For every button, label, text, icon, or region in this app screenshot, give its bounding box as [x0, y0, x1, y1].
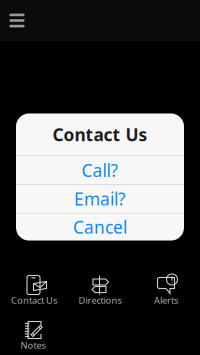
button[interactable]: Cancel	[16, 214, 184, 241]
staticText: Notes	[20, 339, 45, 351]
staticText: Cancel	[73, 215, 127, 238]
button[interactable]: Alerts	[133, 275, 199, 320]
staticText: Contact Us	[52, 123, 147, 146]
staticText: Email?	[74, 187, 126, 210]
staticText: Call?	[81, 159, 118, 182]
staticText: Directions	[78, 294, 121, 306]
button[interactable]: Menu	[0, 0, 34, 41]
staticText: Alerts	[154, 294, 178, 306]
button[interactable]: Notes	[0, 320, 66, 355]
button[interactable]: Directions	[67, 275, 133, 320]
button[interactable]: Contact Us	[1, 275, 67, 320]
button[interactable]: Email?	[16, 185, 184, 213]
button[interactable]: Call?	[16, 156, 184, 184]
staticText: Contact Us	[11, 294, 57, 306]
